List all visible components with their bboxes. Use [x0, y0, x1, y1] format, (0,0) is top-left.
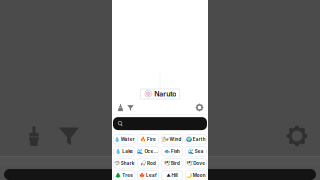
- button[interactable]: Filter: [125, 101, 135, 114]
- button[interactable]: 🌊: [185, 147, 206, 156]
- button[interactable]: Settings: [194, 101, 204, 114]
- staticText: Water: [121, 137, 135, 142]
- staticText: 🕊: [186, 160, 192, 166]
- staticText: Fish: [171, 149, 180, 154]
- staticText: Shark: [121, 161, 135, 166]
- staticText: ⛰: [166, 173, 170, 178]
- staticText: Dove: [193, 161, 205, 166]
- staticText: 🌬: [162, 136, 168, 142]
- staticText: 🔥: [140, 136, 146, 142]
- staticText: 🍥: [144, 90, 153, 98]
- staticText: Moon: [193, 173, 206, 178]
- button[interactable]: 🌍: [185, 135, 206, 144]
- staticText: 🐟: [164, 148, 170, 154]
- button[interactable]: 🌙: [185, 171, 206, 180]
- button[interactable]: 🕊: [185, 159, 206, 168]
- staticText: 🦈: [114, 160, 120, 166]
- button[interactable]: 🌬: [161, 135, 183, 144]
- button[interactable]: 💧: [113, 147, 135, 156]
- button[interactable]: 🍁: [137, 171, 159, 180]
- staticText: Leaf: [146, 173, 157, 178]
- button[interactable]: ⛰: [161, 171, 183, 180]
- staticText: 🍁: [139, 172, 145, 178]
- staticText: Bird: [171, 161, 180, 166]
- button[interactable]: 🕊: [161, 159, 183, 168]
- staticText: Naruto: [154, 90, 176, 98]
- staticText: 🎣: [140, 160, 146, 166]
- staticText: 🌙: [186, 172, 192, 178]
- staticText: Ocean: [144, 149, 159, 154]
- button[interactable]: 💧: [113, 135, 135, 144]
- staticText: 🌊: [137, 148, 143, 154]
- staticText: Wind: [169, 137, 181, 142]
- staticText: Earth: [193, 137, 206, 142]
- staticText: 💧: [115, 148, 121, 154]
- button[interactable]: Brush: [115, 101, 125, 114]
- button[interactable]: 🔥: [137, 135, 159, 144]
- staticText: Fire: [147, 137, 156, 142]
- staticText: 🌲: [115, 172, 121, 178]
- button[interactable]: 🌊: [137, 147, 159, 156]
- staticText: 🕊: [164, 160, 170, 166]
- button[interactable]: 🍥: [140, 89, 180, 99]
- staticText: Hill: [171, 173, 177, 178]
- staticText: Rod: [147, 161, 156, 166]
- button[interactable]: 🌲: [113, 171, 135, 180]
- button[interactable]: 🐟: [161, 147, 183, 156]
- staticText: Sea: [195, 149, 204, 154]
- staticText: 🌍: [186, 136, 192, 142]
- staticText: Lake: [122, 149, 133, 154]
- staticText: Tree: [122, 173, 133, 178]
- button[interactable]: [113, 117, 207, 130]
- button[interactable]: 🦈: [113, 159, 135, 168]
- staticText: 💧: [114, 136, 120, 142]
- button[interactable]: 🎣: [137, 159, 159, 168]
- staticText: 🌊: [188, 148, 194, 154]
